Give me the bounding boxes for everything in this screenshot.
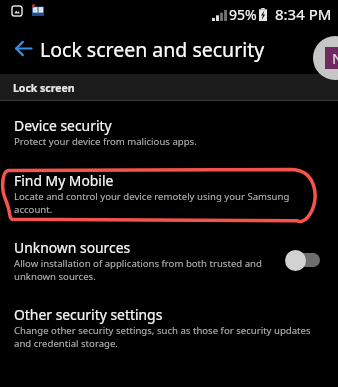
staticText: 95% [229,5,257,24]
staticText: Other security settings [14,305,163,324]
button[interactable]: Back [6,32,40,64]
staticText: Device security [14,116,112,135]
staticText: Locate and control your device remotely … [14,190,324,216]
staticText: Change other security settings, such as … [14,324,324,350]
button[interactable]: Find My Mobile [0,163,338,221]
button[interactable]: OneNote [313,36,338,80]
staticText: 8:34 PM [275,4,332,24]
staticText: Allow installation of applications from … [14,257,269,283]
button[interactable]: Unknown sources toggle, off [285,249,320,271]
button[interactable]: Other security settings [0,297,338,355]
staticText: Lock screen [13,81,75,95]
staticText: Lock screen and security [40,36,265,63]
button[interactable]: Unknown sources [0,230,338,288]
staticText: Unknown sources [14,238,131,257]
staticText: Find My Mobile [14,171,114,190]
staticText: Protect your device from malicious apps. [14,135,197,148]
staticText: N [332,48,338,68]
button[interactable]: Device security [0,108,338,158]
